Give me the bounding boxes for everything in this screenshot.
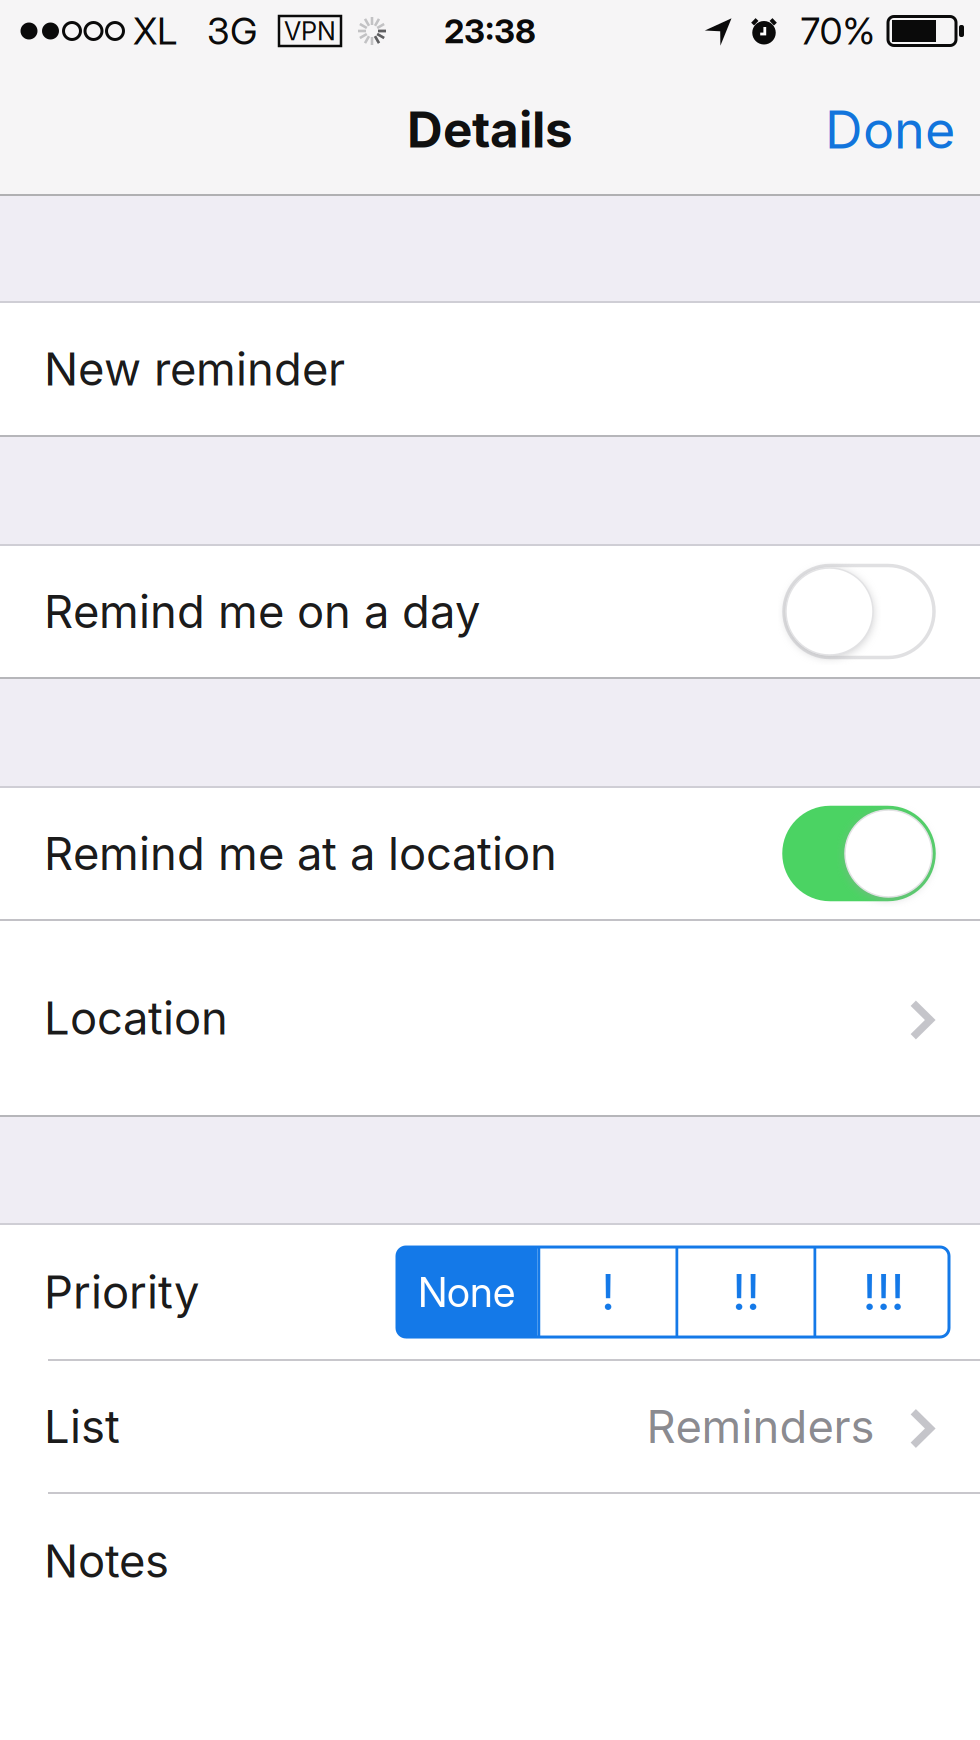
staticText: Details [407,100,573,159]
staticText: VPN [284,16,336,46]
staticText: 23:38 [444,11,536,51]
button[interactable]: !! [678,1247,813,1337]
staticText: Location [44,991,228,1045]
button[interactable]: List [0,1361,980,1492]
staticText: Done [825,98,955,161]
staticText: XL [133,8,177,54]
button[interactable]: Remind me at a location [0,788,980,919]
staticText: Reminders [646,1399,874,1454]
staticText: ! [601,1262,615,1322]
staticText: !!! [862,1262,904,1322]
staticText: 70% [800,8,875,54]
button[interactable]: None [395,1247,537,1337]
button[interactable]: Location [0,921,980,1115]
staticText: !! [732,1262,760,1322]
button[interactable]: Done [799,76,980,183]
staticText: Remind me on a day [44,584,480,639]
staticText: Remind me at a location [44,826,557,881]
staticText: Notes [44,1534,169,1588]
button[interactable]: ! [540,1247,675,1337]
staticText: None [418,1267,515,1317]
staticText: List [44,1399,120,1454]
staticText: New reminder [44,342,345,396]
button[interactable]: Remind me on a day [0,546,980,677]
staticText: 3G [207,8,257,54]
button[interactable]: !!! [816,1247,950,1337]
staticText: Priority [44,1265,199,1319]
